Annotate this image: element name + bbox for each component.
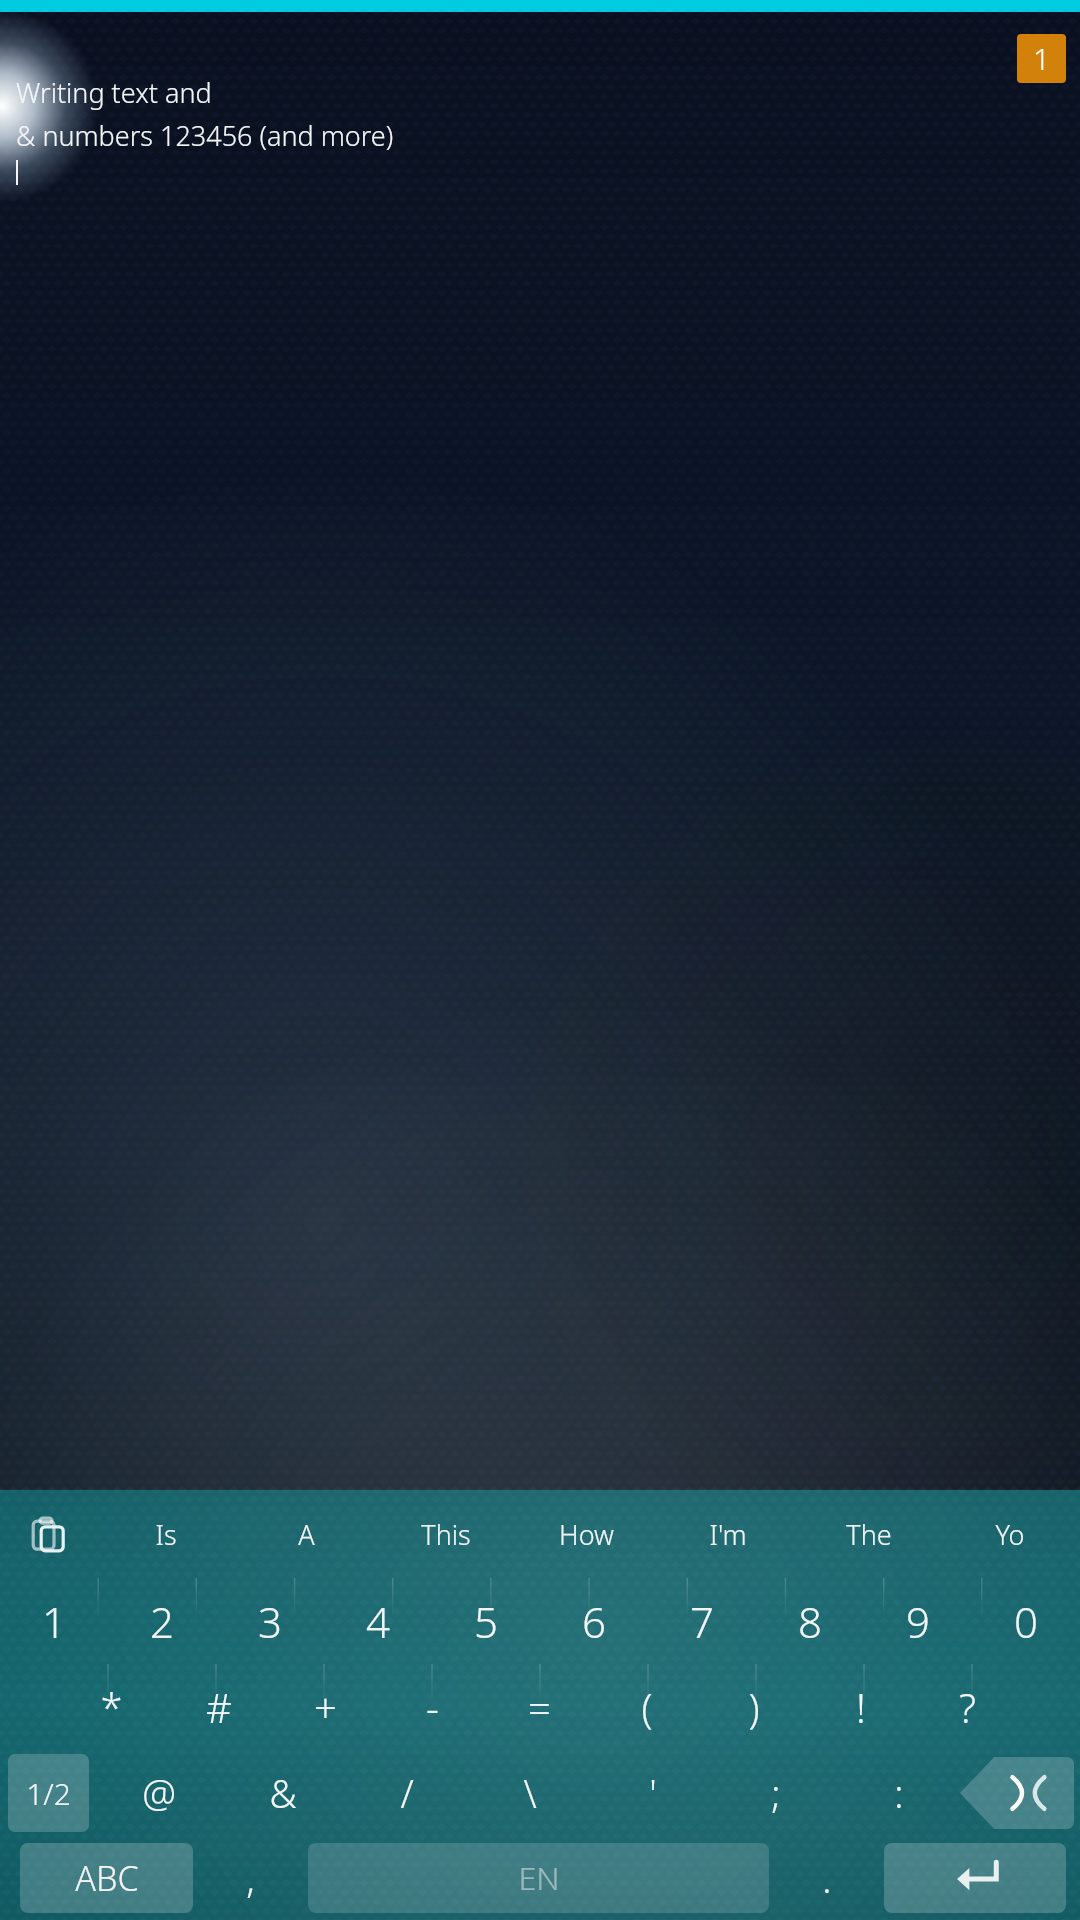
button[interactable]: & — [221, 1750, 345, 1836]
staticText: ABC — [75, 1855, 139, 1901]
staticText: Yo — [995, 1516, 1025, 1553]
staticText: 1 — [1033, 38, 1051, 79]
button[interactable]: 1/2 — [8, 1754, 89, 1832]
button[interactable]: 9 — [864, 1578, 972, 1664]
staticText: , — [246, 1852, 255, 1904]
button[interactable]: ; — [714, 1750, 837, 1836]
button[interactable]: 3 — [216, 1578, 324, 1664]
button[interactable]: . — [769, 1843, 884, 1913]
button[interactable]: : — [837, 1750, 960, 1836]
button[interactable]: 8 — [756, 1578, 864, 1664]
button[interactable]: * — [58, 1664, 165, 1750]
staticText: + — [314, 1680, 337, 1734]
staticText: 2 — [150, 1593, 174, 1650]
staticText: 7 — [690, 1593, 714, 1650]
button[interactable]: \ — [468, 1750, 591, 1836]
staticText: 9 — [906, 1593, 930, 1650]
button[interactable]: The — [798, 1490, 939, 1578]
staticText: EN — [518, 1856, 560, 1900]
staticText: How — [559, 1516, 614, 1553]
button[interactable]: / — [345, 1750, 468, 1836]
staticText: ; — [771, 1767, 781, 1819]
staticText: 5 — [474, 1593, 498, 1650]
button[interactable]: 1 — [0, 1578, 108, 1664]
staticText: 1/2 — [26, 1773, 71, 1814]
button[interactable]: Yo — [939, 1490, 1080, 1578]
button[interactable]: ! — [807, 1664, 914, 1750]
button[interactable]: 4 — [324, 1578, 432, 1664]
staticText: ! — [856, 1680, 866, 1734]
staticText: & — [269, 1767, 297, 1819]
button[interactable]: Backspace — [960, 1757, 1074, 1829]
button[interactable]: 0 — [972, 1578, 1080, 1664]
staticText: 6 — [582, 1593, 606, 1650]
staticText: & numbers 123456 (and more) — [16, 117, 394, 154]
button[interactable]: ' — [591, 1750, 714, 1836]
staticText: ' — [649, 1767, 657, 1819]
button[interactable]: I'm — [657, 1490, 798, 1578]
staticText: This — [421, 1516, 471, 1553]
button[interactable]: , — [193, 1843, 308, 1913]
staticText: A — [298, 1516, 315, 1553]
staticText: Is — [155, 1516, 177, 1553]
button[interactable]: 5 — [432, 1578, 540, 1664]
button[interactable]: Clipboard — [0, 1490, 96, 1578]
button[interactable]: Enter — [884, 1843, 1066, 1913]
button[interactable]: 2 — [108, 1578, 216, 1664]
staticText: 0 — [1014, 1593, 1038, 1650]
button[interactable]: + — [272, 1664, 379, 1750]
staticText: = — [528, 1680, 551, 1734]
staticText: - — [426, 1680, 439, 1734]
staticText: # — [206, 1680, 232, 1734]
staticText: I'm — [709, 1516, 747, 1553]
button[interactable]: 6 — [540, 1578, 648, 1664]
staticText: \ — [523, 1767, 537, 1819]
button[interactable]: - — [379, 1664, 486, 1750]
staticText: ( — [641, 1680, 653, 1734]
button[interactable]: ABC — [20, 1843, 193, 1913]
staticText: / — [400, 1767, 414, 1819]
staticText: * — [100, 1680, 123, 1734]
button[interactable]: EN — [308, 1843, 769, 1913]
button[interactable]: Is — [96, 1490, 236, 1578]
button[interactable]: # — [165, 1664, 272, 1750]
staticText: 8 — [798, 1593, 822, 1650]
staticText: The — [846, 1516, 892, 1553]
button[interactable]: A — [236, 1490, 376, 1578]
button[interactable]: 7 — [648, 1578, 756, 1664]
staticText: ? — [959, 1680, 976, 1734]
staticText: : — [894, 1767, 904, 1819]
staticText: 3 — [258, 1593, 282, 1650]
button[interactable]: ( — [593, 1664, 700, 1750]
staticText: Writing text and — [16, 74, 212, 111]
staticText: 1 — [42, 1593, 66, 1650]
button[interactable]: This — [376, 1490, 516, 1578]
button[interactable]: @ — [97, 1750, 221, 1836]
button[interactable]: ? — [914, 1664, 1021, 1750]
button[interactable]: ) — [700, 1664, 807, 1750]
button[interactable]: How — [516, 1490, 657, 1578]
button[interactable]: = — [486, 1664, 593, 1750]
staticText: ) — [748, 1680, 760, 1734]
staticText: . — [822, 1852, 832, 1904]
staticText: 4 — [366, 1593, 390, 1650]
button[interactable]: 1 — [1017, 34, 1066, 83]
staticText: @ — [142, 1767, 176, 1819]
